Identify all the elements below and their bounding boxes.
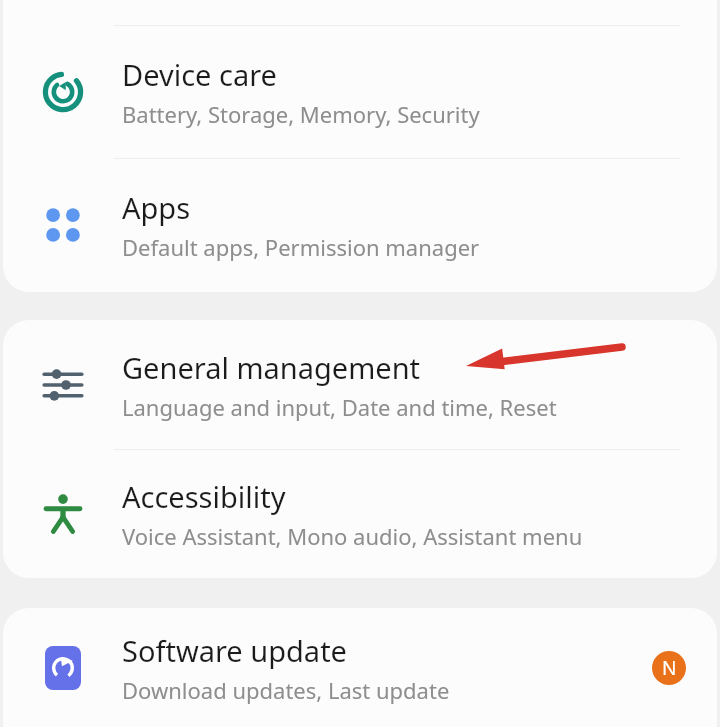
button[interactable]: Software update — [3, 608, 717, 727]
staticText: Software update — [122, 631, 347, 670]
staticText: Language and input, Date and time, Reset — [122, 392, 557, 422]
button[interactable]: Device care — [3, 26, 717, 158]
other: Accessibility — [40, 491, 86, 537]
other: Device care — [40, 69, 86, 115]
other: Apps — [40, 202, 86, 248]
staticText: Accessibility — [122, 477, 286, 516]
staticText: Default apps, Permission manager — [122, 232, 480, 262]
staticText: Voice Assistant, Mono audio, Assistant m… — [122, 521, 583, 551]
staticText: N — [662, 655, 677, 681]
staticText: Device care — [122, 55, 277, 94]
other: General management — [40, 362, 86, 408]
button[interactable]: Apps — [3, 159, 717, 291]
button[interactable]: General management — [3, 320, 717, 449]
button[interactable]: Accessibility — [3, 450, 717, 578]
other: Software update — [45, 646, 81, 690]
staticText: General management — [122, 348, 421, 387]
staticText: Download updates, Last update — [122, 675, 450, 705]
staticText: Apps — [122, 188, 191, 227]
staticText: Battery, Storage, Memory, Security — [122, 99, 480, 129]
